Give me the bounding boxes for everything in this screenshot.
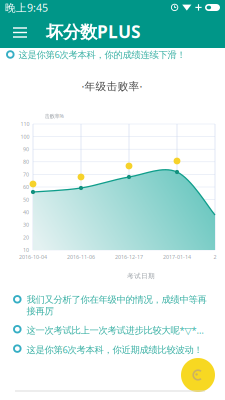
staticText: 这是你第6次考本科，你近期成绩比较波动！: [27, 343, 203, 356]
staticText: 20: [23, 234, 29, 241]
staticText: 100: [20, 133, 29, 140]
staticText: 2016-12-17: [115, 253, 143, 261]
staticText: 50: [23, 196, 29, 203]
staticText: 2016-11-06: [67, 253, 95, 261]
staticText: 坏分数PLUS: [46, 20, 141, 43]
staticText: 击败率%: [44, 112, 63, 120]
staticText: 80: [23, 158, 29, 165]
staticText: 我们又分析了你在年级中的情况，成绩中等再接再厉: [27, 294, 207, 317]
staticText: 90: [23, 146, 29, 153]
staticText: 110: [20, 120, 29, 128]
staticText: 10: [23, 246, 29, 254]
staticText: 这一次考试比上一次考试进步比较大呢*▽*…: [27, 324, 204, 336]
staticText: 70: [23, 171, 29, 178]
button[interactable]: Menu: [4, 15, 36, 47]
staticText: 40: [23, 209, 29, 216]
staticText: 2: [213, 253, 216, 261]
staticText: 晚上9:45: [5, 0, 48, 15]
staticText: ·年级击败率·: [81, 79, 142, 93]
staticText: 60: [23, 183, 29, 191]
button[interactable]: Refresh: [181, 358, 215, 392]
staticText: 2016-10-04: [19, 253, 47, 261]
staticText: 这是你第6次考本科，你的成绩连续下滑！: [19, 48, 186, 61]
staticText: 30: [23, 221, 29, 228]
staticText: 2017-01-14: [163, 253, 191, 261]
staticText: 考试日期: [127, 272, 155, 280]
